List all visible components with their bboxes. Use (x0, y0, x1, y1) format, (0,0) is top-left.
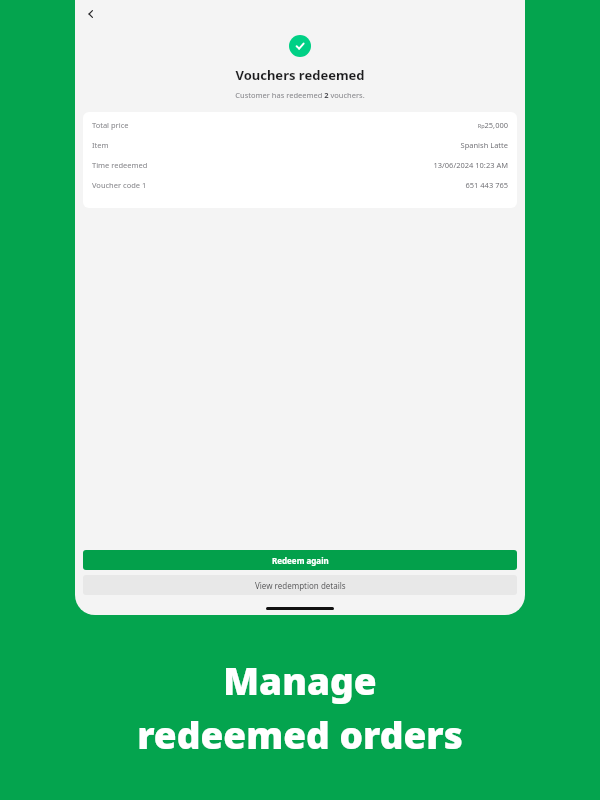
staticText: Total price (92, 120, 129, 130)
staticText: 13/06/2024 10:23 AM (433, 160, 508, 170)
staticText: Manage (223, 655, 377, 705)
staticText: 651 443 765 (465, 180, 508, 190)
button[interactable]: Back (79, 2, 103, 26)
button[interactable]: View redemption details (83, 575, 517, 595)
staticText: redeemed orders (137, 709, 463, 759)
staticText: Vouchers redeemed (235, 66, 365, 84)
staticText: View redemption details (255, 580, 346, 591)
staticText: Rp25,000 (477, 120, 508, 130)
staticText: Redeem again (272, 555, 329, 566)
staticText: Item (92, 140, 109, 150)
staticText: Spanish Latte (460, 140, 508, 150)
staticText: Voucher code 1 (92, 180, 147, 190)
staticText: Time redeemed (92, 160, 148, 170)
button[interactable]: Redeem again (83, 550, 517, 570)
staticText: Customer has redeemed 2 vouchers. (235, 90, 365, 100)
